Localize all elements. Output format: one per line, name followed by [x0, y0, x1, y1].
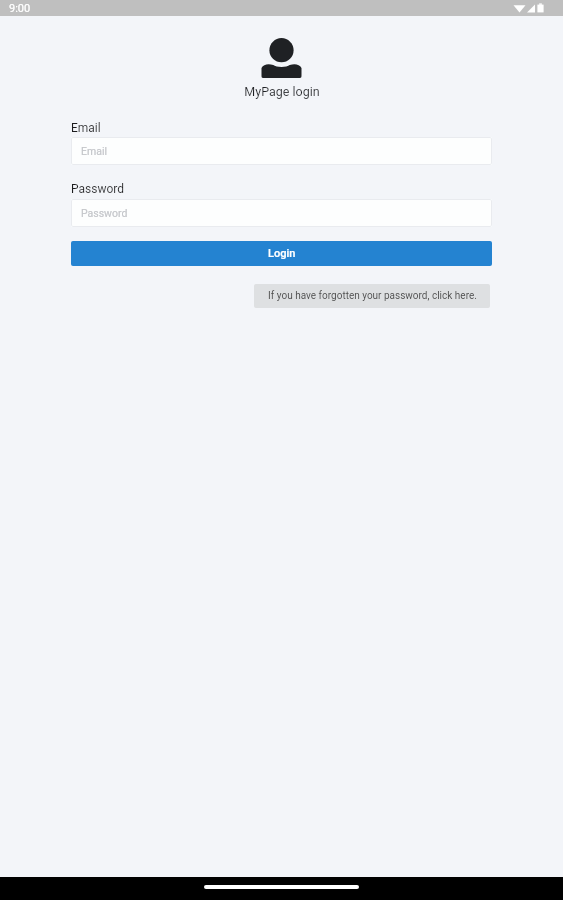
button[interactable]: Password	[71, 199, 492, 227]
staticText: MyPage login	[244, 84, 320, 99]
other: Account	[261, 38, 302, 79]
button[interactable]: If you have forgotten your password, cli…	[254, 284, 490, 308]
staticText: Login	[268, 247, 296, 260]
button[interactable]: Email	[71, 137, 492, 165]
staticText: Email	[71, 121, 101, 135]
staticText: 9:00	[9, 2, 31, 15]
staticText: Password	[81, 207, 128, 219]
staticText: If you have forgotten your password, cli…	[268, 290, 477, 302]
other: Home	[204, 885, 359, 889]
button[interactable]: Login	[71, 241, 492, 266]
staticText: Password	[71, 182, 125, 196]
staticText: Email	[81, 145, 107, 157]
